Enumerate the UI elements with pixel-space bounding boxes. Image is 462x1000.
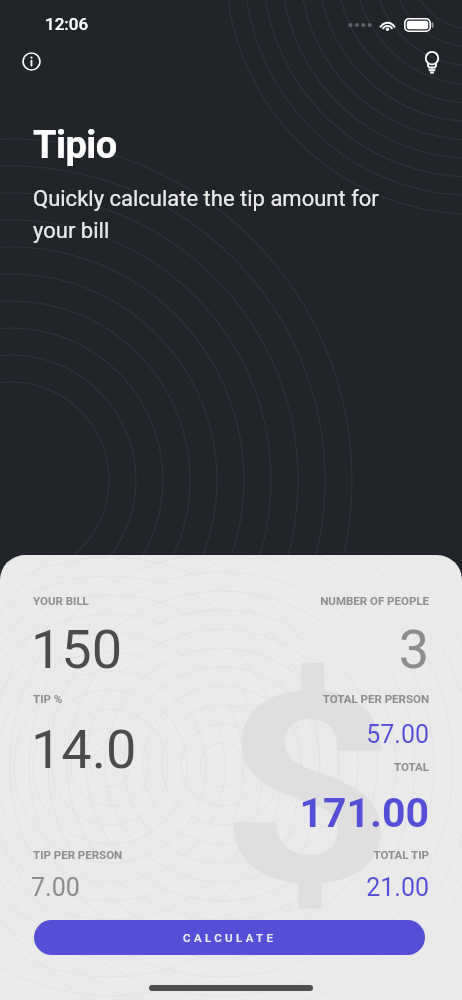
staticText: Tipio	[33, 123, 117, 168]
staticText: 150	[31, 618, 123, 681]
staticText: NUMBER OF PEOPLE	[0, 594, 429, 607]
staticText: CALCULATE	[183, 931, 277, 944]
button[interactable]: CALCULATE	[34, 920, 425, 955]
button[interactable]: Information	[17, 47, 45, 75]
button[interactable]: Toggle theme	[417, 46, 447, 76]
staticText: 14.0	[31, 718, 137, 781]
staticText: TIP %	[33, 692, 63, 705]
staticText: 171.00	[0, 789, 429, 837]
staticText: 3	[0, 618, 429, 681]
staticText: 57.00	[0, 720, 429, 749]
staticText: TIP PER PERSON	[33, 848, 123, 861]
staticText: Quickly calculate the tip amount for you…	[33, 186, 398, 244]
staticText: TOTAL PER PERSON	[0, 692, 429, 705]
staticText: TOTAL TIP	[0, 848, 429, 861]
staticText: $	[220, 635, 396, 946]
staticText: 7.00	[31, 873, 80, 902]
staticText: 12:06	[45, 14, 89, 34]
staticText: TOTAL	[0, 760, 429, 773]
staticText: 21.00	[0, 873, 429, 902]
staticText: YOUR BILL	[33, 594, 89, 607]
